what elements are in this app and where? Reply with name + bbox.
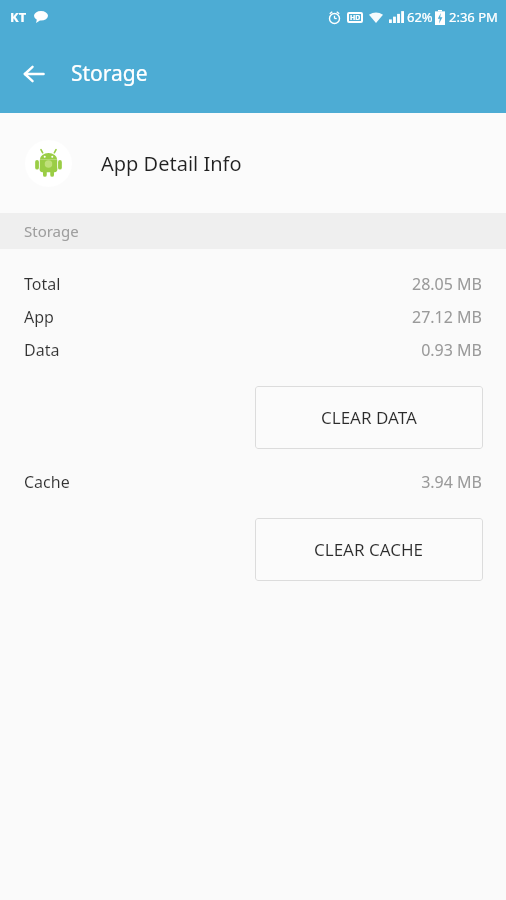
button[interactable]: CLEAR CACHE <box>255 518 483 581</box>
staticText: App Detail Info <box>101 150 242 177</box>
staticText: CLEAR DATA <box>321 406 417 429</box>
button[interactable]: CLEAR DATA <box>255 386 483 449</box>
staticText: Storage <box>24 221 79 241</box>
staticText: Cache <box>24 471 70 493</box>
staticText: Data <box>24 339 60 361</box>
staticText: KT <box>10 8 27 26</box>
button[interactable]: App Detail Info <box>0 113 506 213</box>
staticText: 62% <box>407 8 433 26</box>
staticText: Storage <box>71 59 148 88</box>
button[interactable]: Navigate up <box>10 50 58 98</box>
staticText: 0.93 MB <box>421 339 482 361</box>
staticText: HD <box>350 13 361 23</box>
staticText: CLEAR CACHE <box>314 538 424 561</box>
staticText: Total <box>24 273 61 295</box>
staticText: App <box>24 306 54 328</box>
staticText: 27.12 MB <box>412 306 482 328</box>
staticText: 2:36 PM <box>449 8 498 26</box>
staticText: 3.94 MB <box>421 471 482 493</box>
staticText: 28.05 MB <box>412 273 482 295</box>
